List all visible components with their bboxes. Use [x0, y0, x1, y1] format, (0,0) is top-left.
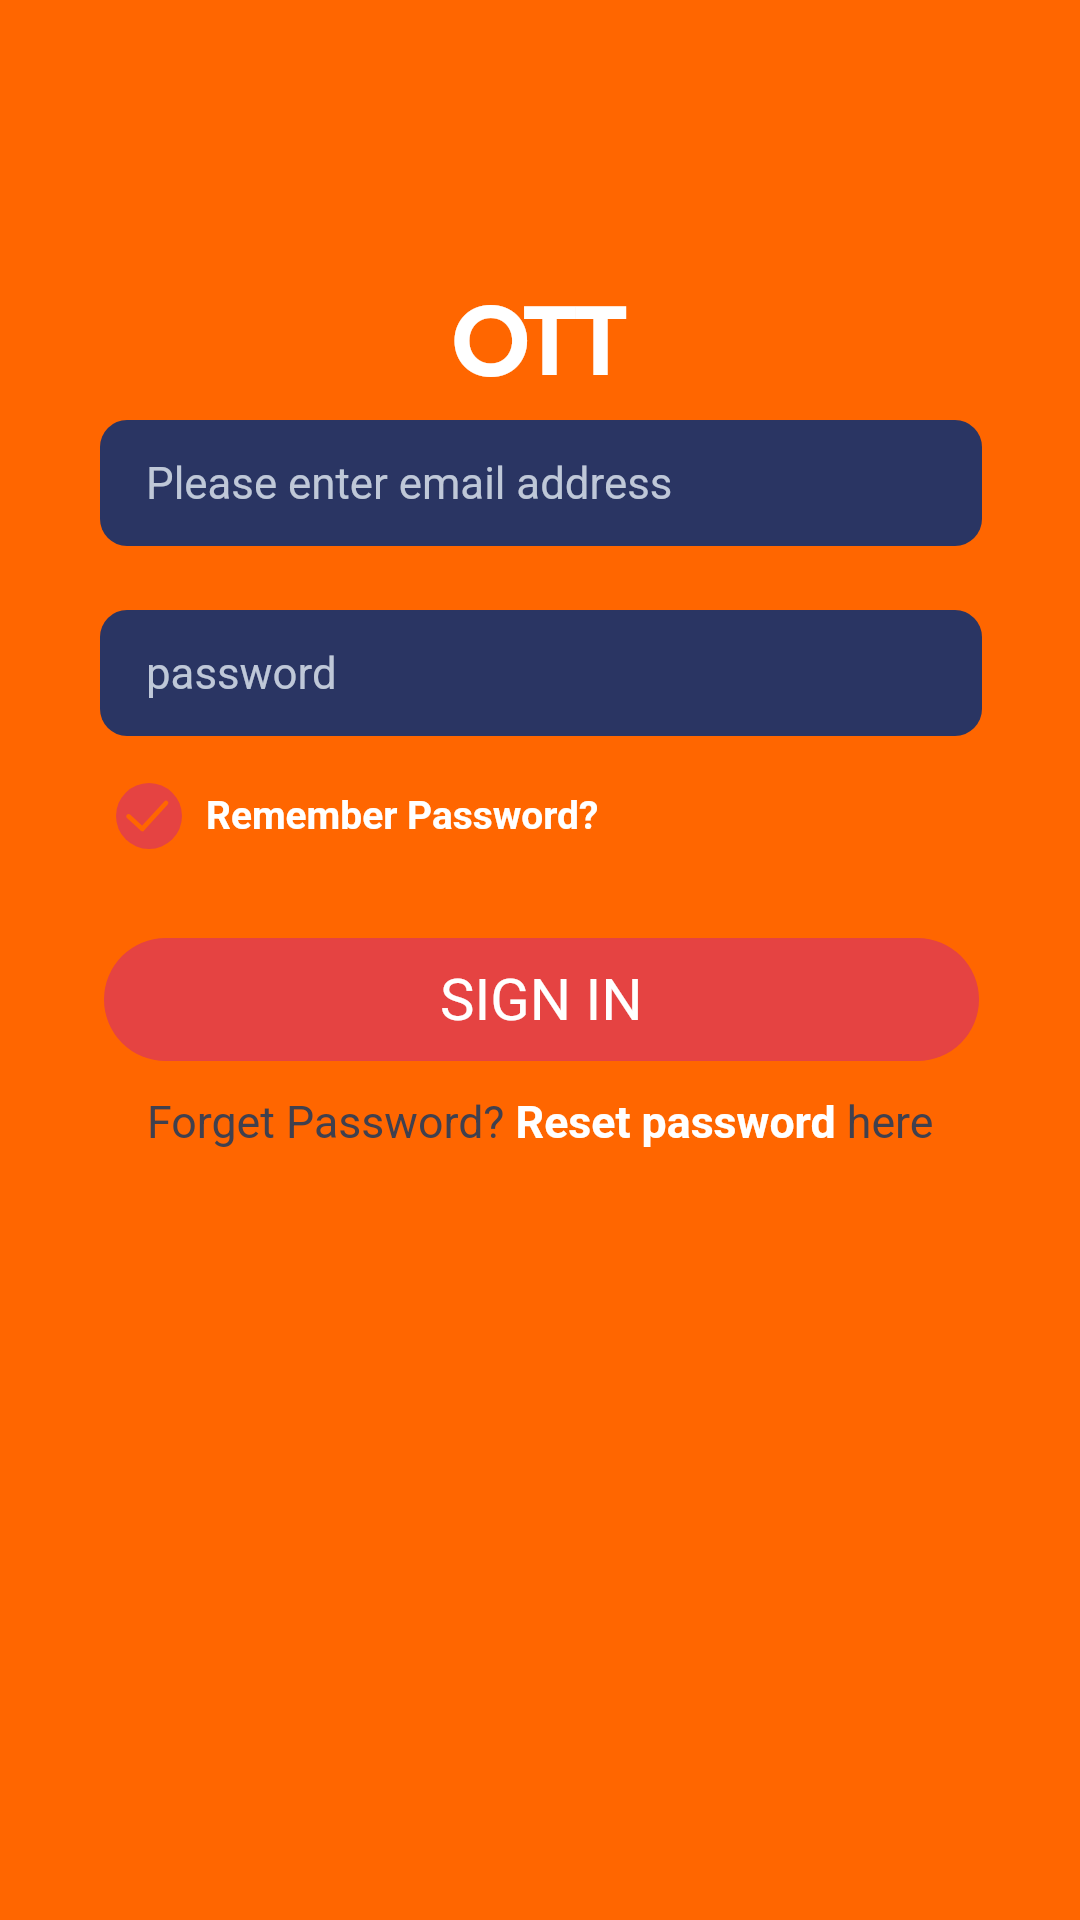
button[interactable]: password	[100, 610, 982, 736]
button[interactable]: Please enter email address	[100, 420, 982, 546]
staticText: Please enter email address	[146, 458, 673, 509]
staticText: OTT	[451, 270, 623, 412]
staticText: password	[146, 648, 337, 699]
button[interactable]: Remember password checkbox, checked	[116, 782, 599, 850]
staticText: Remember Password?	[206, 793, 599, 839]
button[interactable]: SIGN IN	[104, 938, 979, 1061]
button[interactable]: Remember password checkbox, checked	[116, 783, 182, 849]
staticText: SIGN IN	[440, 966, 643, 1034]
button[interactable]: Forget Password? Reset password here	[147, 1097, 934, 1149]
